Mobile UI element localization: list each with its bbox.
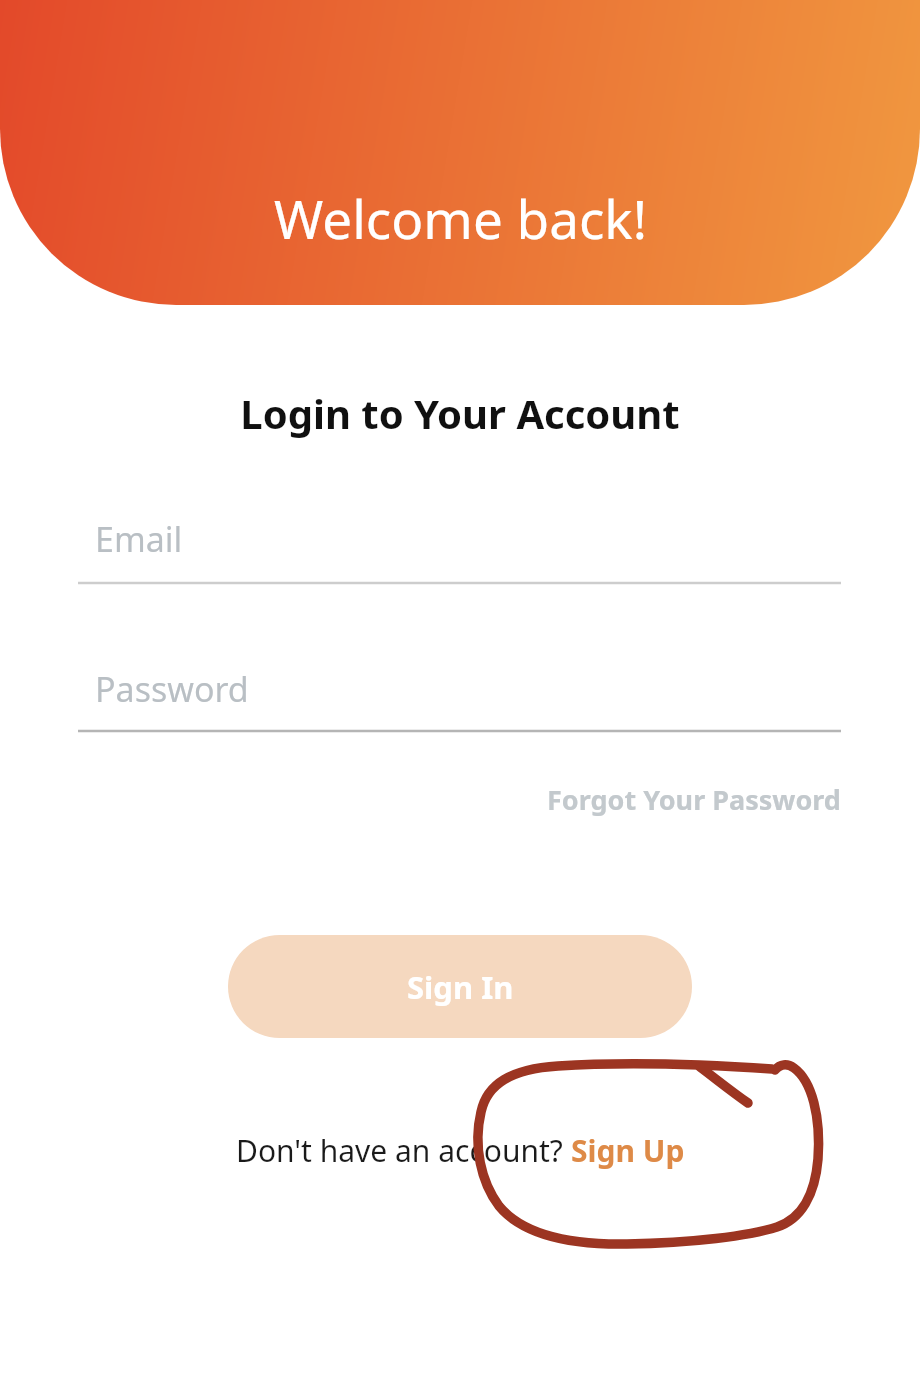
staticText: Don't have an account? bbox=[236, 1130, 571, 1171]
button[interactable]: Forgot Your Password bbox=[520, 775, 841, 823]
button[interactable]: Password bbox=[78, 650, 841, 740]
staticText: Email bbox=[95, 516, 183, 562]
staticText: Password bbox=[95, 666, 249, 712]
button[interactable]: Email bbox=[78, 500, 841, 592]
staticText: Sign Up bbox=[571, 1130, 685, 1171]
button[interactable]: Sign Up bbox=[571, 1130, 685, 1171]
staticText: Login to Your Account bbox=[240, 386, 680, 440]
staticText: Forgot Your Password bbox=[547, 781, 841, 818]
other: Annotation highlighting Sign Up bbox=[0, 0, 920, 1383]
button[interactable]: Sign In bbox=[228, 935, 692, 1038]
staticText: Sign In bbox=[407, 966, 514, 1008]
staticText: Welcome back! bbox=[274, 182, 647, 254]
